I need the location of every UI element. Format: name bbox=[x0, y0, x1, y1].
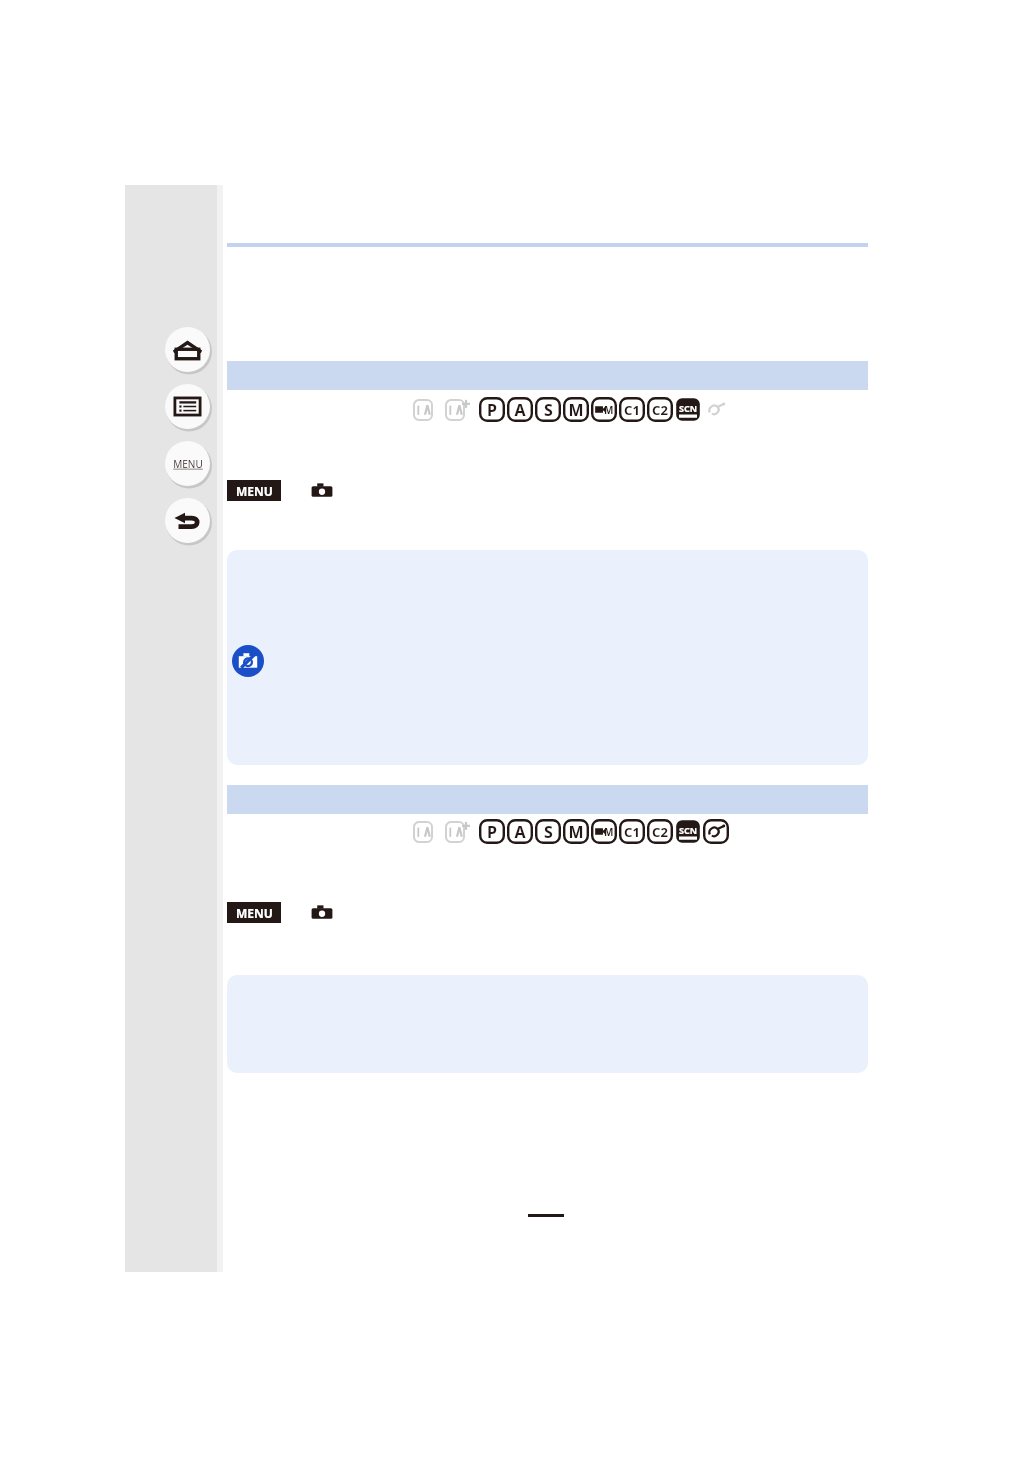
staticText: M bbox=[604, 825, 614, 839]
button[interactable]: Contents bbox=[163, 382, 212, 431]
staticText: C1 bbox=[624, 401, 640, 419]
staticText: S bbox=[544, 399, 553, 421]
staticText: A bbox=[514, 821, 526, 843]
staticText: C2 bbox=[652, 823, 668, 841]
button[interactable]: Home bbox=[163, 325, 212, 374]
button[interactable]: Back bbox=[163, 496, 212, 545]
staticText: C2 bbox=[652, 401, 668, 419]
button[interactable]: MENU bbox=[227, 478, 335, 502]
staticText: M bbox=[568, 821, 584, 843]
staticText: S bbox=[544, 821, 553, 843]
other: Not available bbox=[232, 645, 264, 677]
staticText: SCN bbox=[679, 824, 698, 836]
button[interactable]: Menu bbox=[163, 439, 212, 488]
button[interactable]: MENU bbox=[227, 900, 335, 924]
staticText: MENU bbox=[236, 483, 273, 499]
staticText: M bbox=[604, 403, 614, 417]
staticText: C1 bbox=[624, 823, 640, 841]
staticText: SCN bbox=[679, 402, 698, 414]
staticText: A bbox=[514, 399, 526, 421]
staticText: MENU bbox=[236, 905, 273, 921]
staticText: M bbox=[568, 399, 584, 421]
staticText: P bbox=[487, 821, 497, 843]
staticText: P bbox=[487, 399, 497, 421]
staticText: MENU bbox=[173, 457, 203, 471]
